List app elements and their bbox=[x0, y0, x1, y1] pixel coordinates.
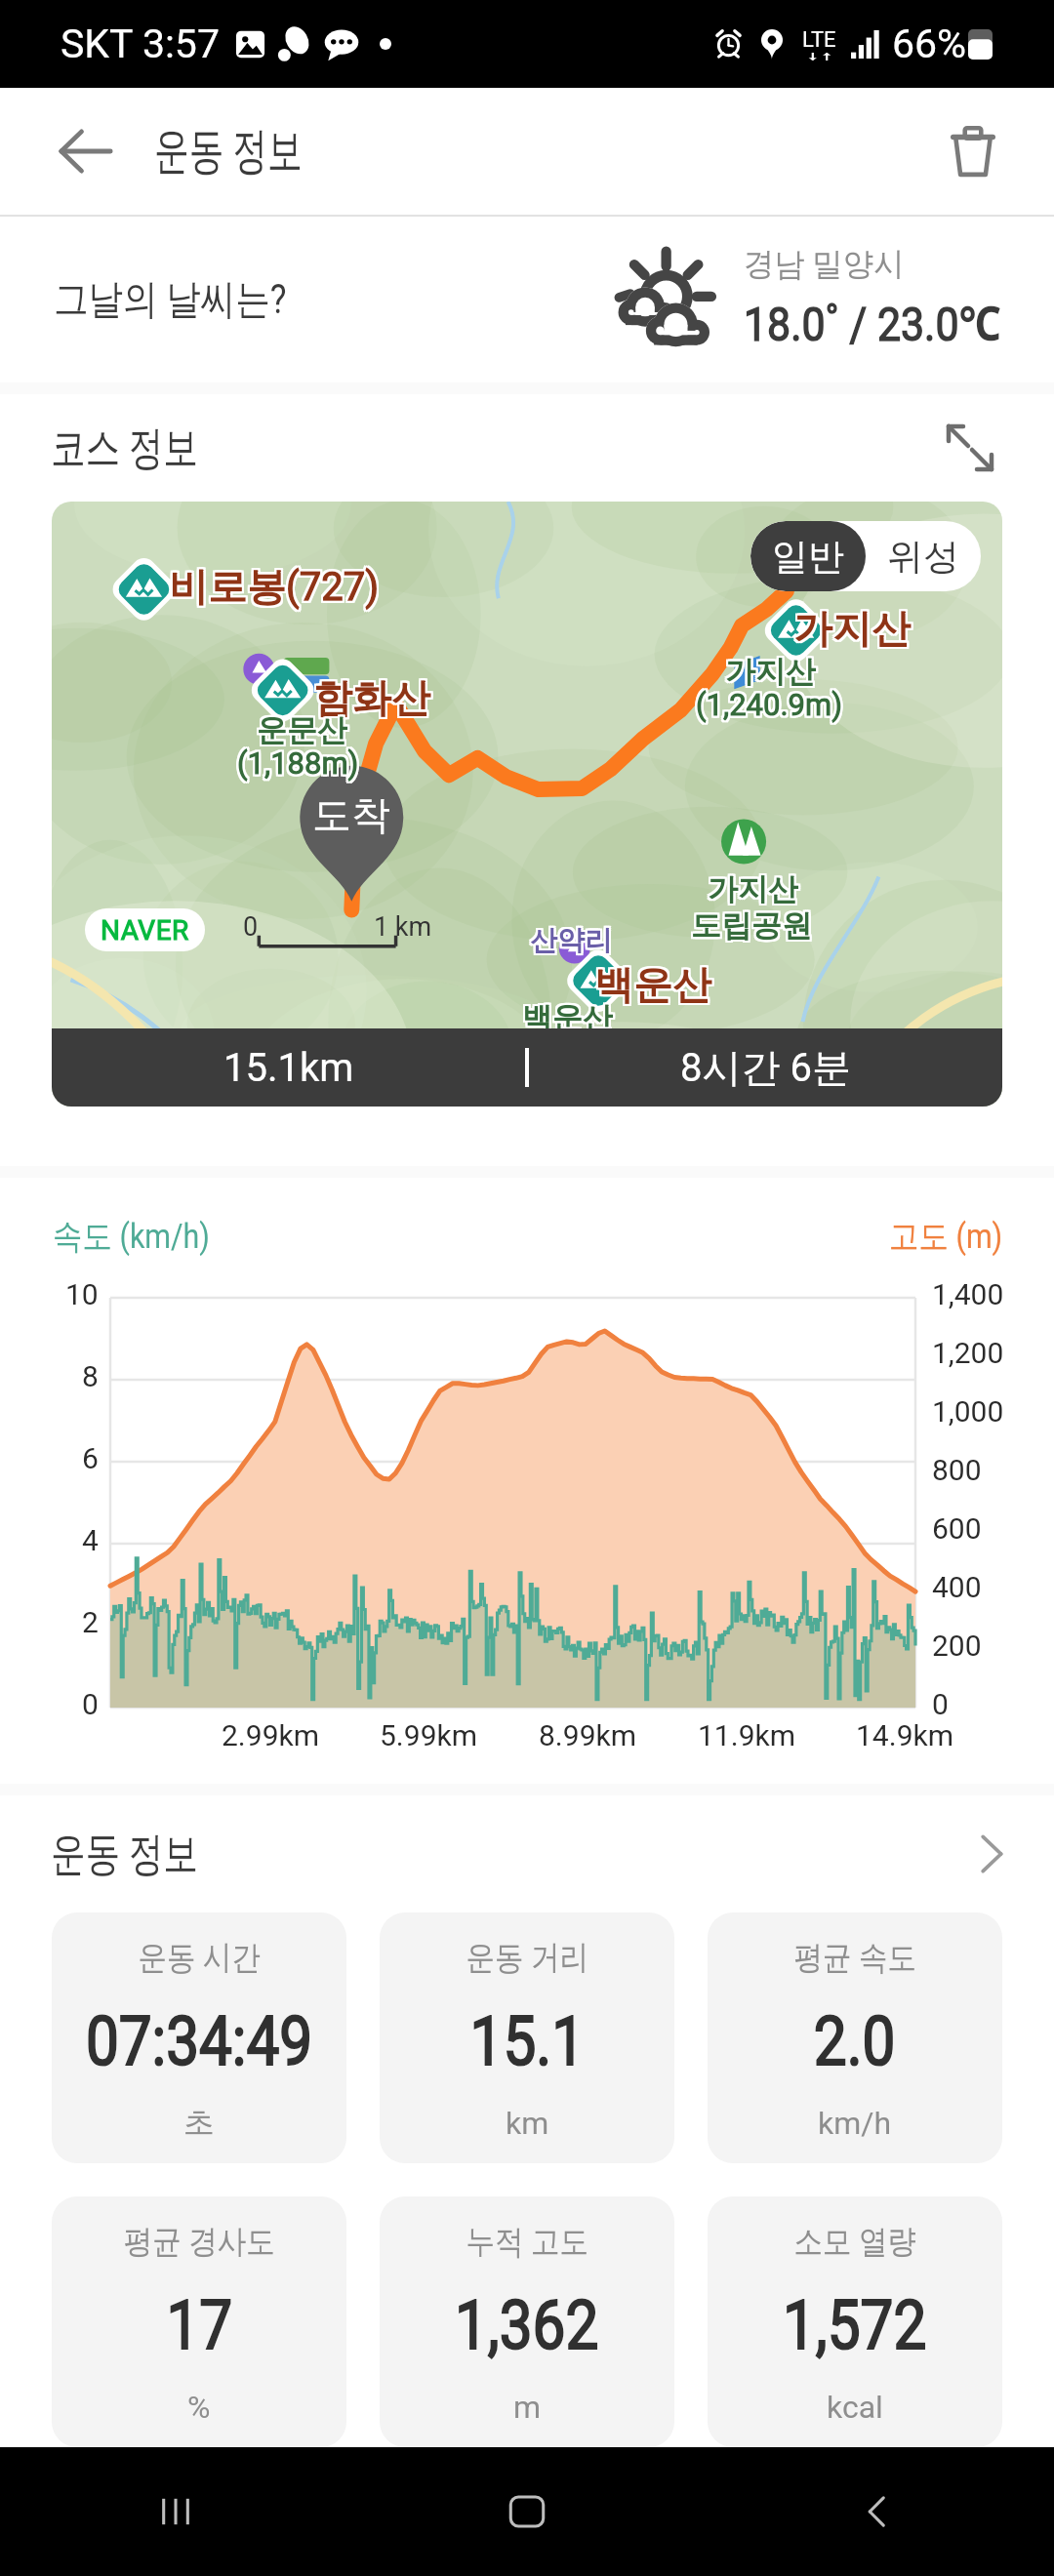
staticText: 17 bbox=[166, 2285, 233, 2365]
staticText: 산약리 bbox=[528, 923, 610, 957]
staticText: 0 bbox=[82, 1687, 99, 1721]
staticText: 가지산 bbox=[725, 653, 816, 691]
staticText: 운문산 bbox=[259, 713, 349, 751]
staticText: (1,188m) bbox=[237, 745, 359, 781]
staticText: 비로봉(727) bbox=[171, 564, 382, 613]
staticText: (1,240.9m) bbox=[694, 689, 840, 724]
button[interactable]: 소모 열량 bbox=[708, 2196, 1002, 2447]
staticText: 누적 고도 bbox=[466, 2221, 589, 2263]
staticText: 1,362 bbox=[455, 2285, 599, 2365]
staticText: LTE bbox=[802, 27, 836, 53]
button[interactable]: 그날의 날씨는? bbox=[0, 217, 1054, 382]
staticText: 15.1 bbox=[470, 2001, 585, 2081]
staticText: 그날의 날씨는? bbox=[54, 274, 287, 326]
button[interactable]: 평균 경사도 bbox=[52, 2196, 346, 2447]
staticText: 5.99km bbox=[380, 1718, 478, 1752]
staticText: 66% bbox=[892, 20, 967, 67]
staticText: 도립공원 bbox=[691, 906, 812, 945]
staticText: SKT 3:57 bbox=[61, 20, 220, 67]
staticText: 백운산 bbox=[592, 960, 709, 1009]
button[interactable]: 누적 고도 bbox=[380, 2196, 674, 2447]
staticText: 백운산 bbox=[520, 1001, 611, 1039]
staticText: 가지산 bbox=[791, 606, 909, 655]
staticText: 가지산 bbox=[793, 602, 911, 651]
staticText: 비로봉(727) bbox=[171, 560, 382, 609]
staticText: 도립공원 bbox=[689, 908, 810, 946]
staticText: 0 bbox=[932, 1687, 949, 1721]
staticText: (1,240.9m) bbox=[694, 687, 840, 722]
staticText: (1,188m) bbox=[235, 745, 357, 781]
staticText: 10 bbox=[65, 1277, 99, 1311]
staticText: 가지산 bbox=[727, 651, 818, 689]
button[interactable]: Recents bbox=[0, 2447, 351, 2576]
staticText: 비로봉(727) bbox=[169, 560, 380, 609]
staticText: 산약리 bbox=[532, 921, 614, 955]
staticText: 운동 정보 bbox=[154, 120, 302, 182]
staticText: 비로봉(727) bbox=[171, 562, 382, 611]
button[interactable]: Home bbox=[351, 2447, 703, 2576]
staticText: 백운산 bbox=[594, 962, 711, 1011]
staticText: 가지산 bbox=[727, 653, 818, 691]
staticText: (1,240.9m) bbox=[698, 689, 844, 724]
staticText: 백운산 bbox=[520, 999, 611, 1037]
staticText: 비로봉(727) bbox=[169, 562, 380, 611]
button[interactable]: 운동 시간 bbox=[52, 1912, 346, 2163]
staticText: (1,240.9m) bbox=[698, 685, 844, 720]
staticText: 가지산 bbox=[725, 655, 816, 693]
staticText: 도립공원 bbox=[693, 906, 814, 945]
staticText: 초 bbox=[183, 2103, 215, 2142]
staticText: 2 bbox=[82, 1605, 99, 1639]
staticText: 가지산 bbox=[706, 872, 796, 910]
button[interactable]: Back bbox=[27, 93, 144, 210]
staticText: 가지산 bbox=[723, 651, 814, 689]
staticText: % bbox=[187, 2389, 211, 2426]
staticText: 8시간 6분 bbox=[680, 1043, 851, 1092]
staticText: 코스 정보 bbox=[51, 420, 198, 477]
staticText: 소모 열량 bbox=[794, 2221, 917, 2263]
staticText: 일반 bbox=[772, 534, 844, 580]
staticText: 운문산 bbox=[255, 713, 345, 751]
button[interactable]: 비로봉(727) bbox=[52, 502, 1002, 1107]
button[interactable]: 운동 정보 bbox=[0, 1795, 1054, 1912]
staticText: 함화산 bbox=[313, 671, 430, 720]
staticText: 비로봉(727) bbox=[167, 564, 378, 613]
button[interactable]: Back bbox=[703, 2447, 1054, 2576]
staticText: 운동 시간 bbox=[138, 1937, 261, 1979]
button[interactable]: 위성 bbox=[866, 521, 981, 591]
staticText: NAVER bbox=[101, 914, 189, 946]
staticText: 운동 거리 bbox=[466, 1937, 589, 1979]
button[interactable]: Delete bbox=[919, 98, 1027, 205]
staticText: 15.1km bbox=[223, 1045, 354, 1091]
staticText: (1,188m) bbox=[235, 744, 357, 779]
staticText: 가지산 bbox=[709, 868, 800, 906]
staticText: 1,200 bbox=[932, 1336, 1004, 1370]
staticText: km/h bbox=[818, 2105, 892, 2142]
staticText: (1,188m) bbox=[237, 747, 359, 783]
staticText: 가지산 bbox=[723, 653, 814, 691]
staticText: 가지산 bbox=[727, 655, 818, 693]
staticText: 산약리 bbox=[530, 921, 612, 955]
staticText: 6 bbox=[82, 1441, 99, 1475]
button[interactable]: Expand map bbox=[923, 401, 1017, 495]
staticText: 함화산 bbox=[315, 671, 432, 720]
staticText: m bbox=[513, 2389, 542, 2426]
staticText: 운동 정보 bbox=[51, 1826, 198, 1883]
staticText: 200 bbox=[932, 1629, 982, 1663]
staticText: 가지산 bbox=[708, 868, 798, 906]
button[interactable]: 평균 속도 bbox=[708, 1912, 1002, 2163]
staticText: 가지산 bbox=[791, 602, 909, 651]
staticText: 함화산 bbox=[311, 675, 428, 724]
staticText: 평균 속도 bbox=[794, 1937, 917, 1979]
staticText: 가지산 bbox=[709, 870, 800, 908]
staticText: 백운산 bbox=[592, 958, 709, 1007]
staticText: km bbox=[506, 2105, 549, 2142]
staticText: 8 bbox=[82, 1359, 99, 1393]
button[interactable]: 운동 거리 bbox=[380, 1912, 674, 2163]
staticText: (1,240.9m) bbox=[696, 687, 842, 722]
button[interactable]: 일반 bbox=[750, 521, 866, 591]
staticText: 고도 (m) bbox=[889, 1215, 1003, 1258]
staticText: 함화산 bbox=[313, 675, 430, 724]
staticText: 백운산 bbox=[596, 960, 713, 1009]
staticText: 가지산 bbox=[795, 602, 912, 651]
staticText: 가지산 bbox=[725, 651, 816, 689]
